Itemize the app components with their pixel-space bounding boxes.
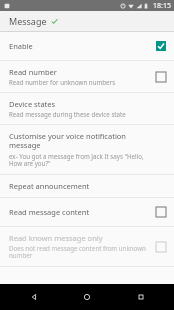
- button[interactable]: Read known message only: [0, 227, 174, 266]
- staticText: Read number: [9, 67, 57, 77]
- button[interactable]: Read known message only: [153, 239, 169, 255]
- button[interactable]: Repeat announcement: [0, 175, 174, 197]
- staticText: Device states: [9, 99, 56, 109]
- staticText: Does not read message content from unkno…: [9, 244, 148, 260]
- button[interactable]: Home: [67, 284, 107, 310]
- button[interactable]: Enable: [0, 32, 174, 60]
- staticText: ex- You got a message from Jack It says …: [9, 152, 148, 168]
- button[interactable]: Recent apps: [121, 284, 161, 310]
- button[interactable]: Enable: [153, 38, 169, 54]
- button[interactable]: Device states: [0, 93, 174, 124]
- staticText: Customise your voice notification messag…: [9, 131, 148, 151]
- button[interactable]: Customise your voice notification messag…: [0, 125, 174, 174]
- button[interactable]: Read number: [0, 61, 174, 92]
- button[interactable]: Read message content: [153, 204, 169, 220]
- staticText: Message: [9, 15, 47, 27]
- staticText: Read known message only: [9, 233, 103, 243]
- staticText: Read message content: [9, 207, 90, 217]
- staticText: 18:15: [153, 1, 171, 11]
- staticText: Repeat announcement: [9, 181, 90, 191]
- button[interactable]: Back: [14, 284, 54, 310]
- staticText: Enable: [9, 41, 33, 51]
- button[interactable]: Read message content: [0, 198, 174, 226]
- button[interactable]: Read number: [153, 69, 169, 85]
- staticText: Read number for unknown numbers: [9, 78, 116, 86]
- staticText: Read message during these device state: [9, 110, 126, 118]
